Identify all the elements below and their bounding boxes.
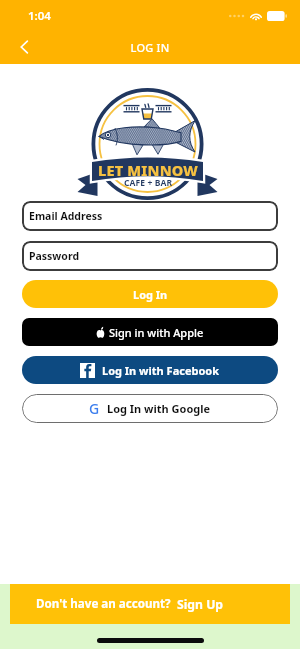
staticText: Log In with Google — [107, 401, 211, 416]
button[interactable]: Don't have an account? — [10, 584, 290, 624]
button[interactable]: Log In — [22, 280, 278, 308]
staticText: Sign Up — [177, 596, 224, 613]
staticText: LET MINNOW — [88, 160, 208, 180]
staticText: Password — [29, 249, 80, 263]
staticText: G — [89, 399, 100, 418]
button[interactable]: Log In with Facebook — [22, 356, 278, 384]
button[interactable]: G — [22, 394, 278, 423]
staticText: Log In — [133, 287, 168, 302]
button[interactable]: Sign in with Apple — [22, 318, 278, 346]
button[interactable]: Email Address — [22, 201, 278, 231]
button[interactable]: Back — [8, 33, 40, 61]
button[interactable]: Password — [22, 241, 278, 271]
staticText: 1:04 — [28, 8, 51, 24]
staticText: CAFE + BAR — [88, 177, 208, 189]
staticText: Don't have an account? — [36, 596, 171, 612]
staticText: Email Address — [29, 209, 103, 223]
staticText: Log In with Facebook — [102, 363, 220, 378]
staticText: Sign in with Apple — [109, 325, 204, 340]
staticText: LOG IN — [0, 40, 300, 55]
